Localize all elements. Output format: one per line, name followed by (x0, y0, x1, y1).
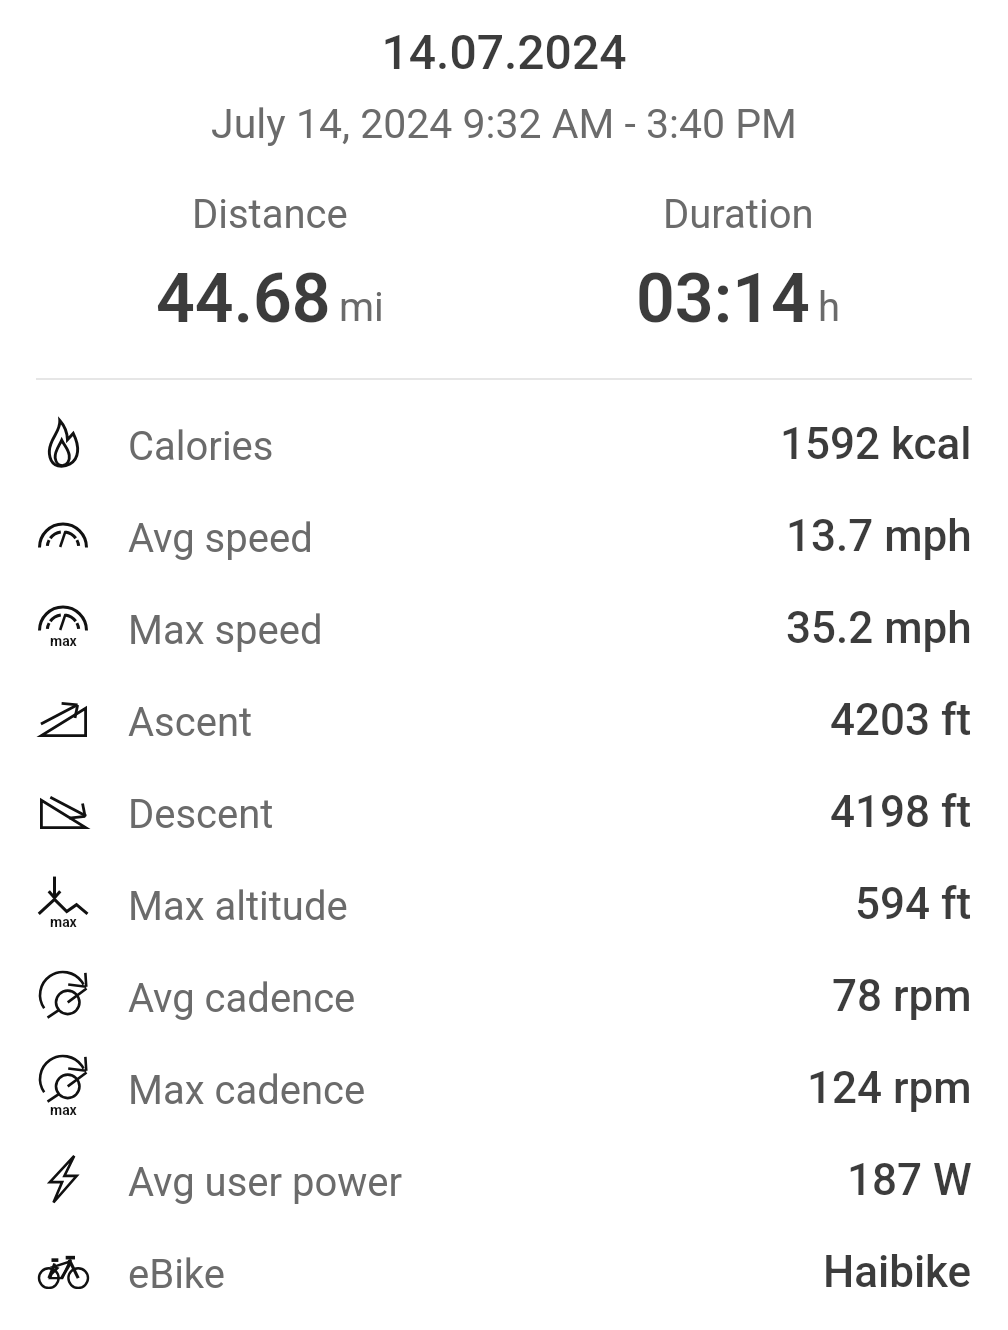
staticText: Descent (128, 791, 274, 838)
staticText: max (50, 914, 77, 930)
staticText: eBike (128, 1251, 225, 1298)
staticText: 1592 kcal (780, 418, 972, 470)
button[interactable]: max (0, 857, 1008, 949)
staticText: Calories (128, 423, 274, 470)
staticText: Avg user power (128, 1159, 403, 1206)
staticText: Max speed (128, 607, 323, 654)
staticText: 594 ft (855, 878, 972, 930)
staticText: 124 rpm (807, 1062, 972, 1114)
staticText: July 14, 2024 9:32 AM - 3:40 PM (0, 100, 1008, 148)
staticText: mi (339, 284, 384, 331)
staticText: 35.2 mph (786, 602, 972, 654)
staticText: Max cadence (128, 1067, 366, 1114)
staticText: 44.68 (156, 259, 331, 339)
staticText: 78 rpm (832, 970, 972, 1022)
staticText: Ascent (128, 699, 253, 746)
staticText: 03:14 (636, 259, 810, 339)
staticText: Distance (192, 191, 348, 238)
staticText: max (50, 1102, 77, 1118)
staticText: 13.7 mph (786, 510, 972, 562)
button[interactable]: Descent (0, 765, 1008, 857)
staticText: 4203 ft (830, 694, 972, 746)
staticText: 14.07.2024 (0, 24, 1008, 80)
button[interactable]: eBike (0, 1225, 1008, 1317)
staticText: 187 W (847, 1154, 972, 1206)
staticText: 4198 ft (830, 786, 972, 838)
staticText: Haibike (823, 1246, 972, 1298)
button[interactable]: Avg speed (0, 489, 1008, 581)
button[interactable]: Avg cadence (0, 949, 1008, 1041)
staticText: Duration (663, 191, 814, 238)
button[interactable]: max (0, 1041, 1008, 1133)
button[interactable]: Ascent (0, 673, 1008, 765)
staticText: Avg speed (128, 515, 313, 562)
staticText: h (818, 284, 841, 331)
staticText: max (50, 633, 77, 649)
staticText: Max altitude (128, 883, 348, 930)
button[interactable]: max (0, 581, 1008, 673)
staticText: Avg cadence (128, 975, 356, 1022)
button[interactable]: Calories (0, 397, 1008, 489)
button[interactable]: Avg user power (0, 1133, 1008, 1225)
